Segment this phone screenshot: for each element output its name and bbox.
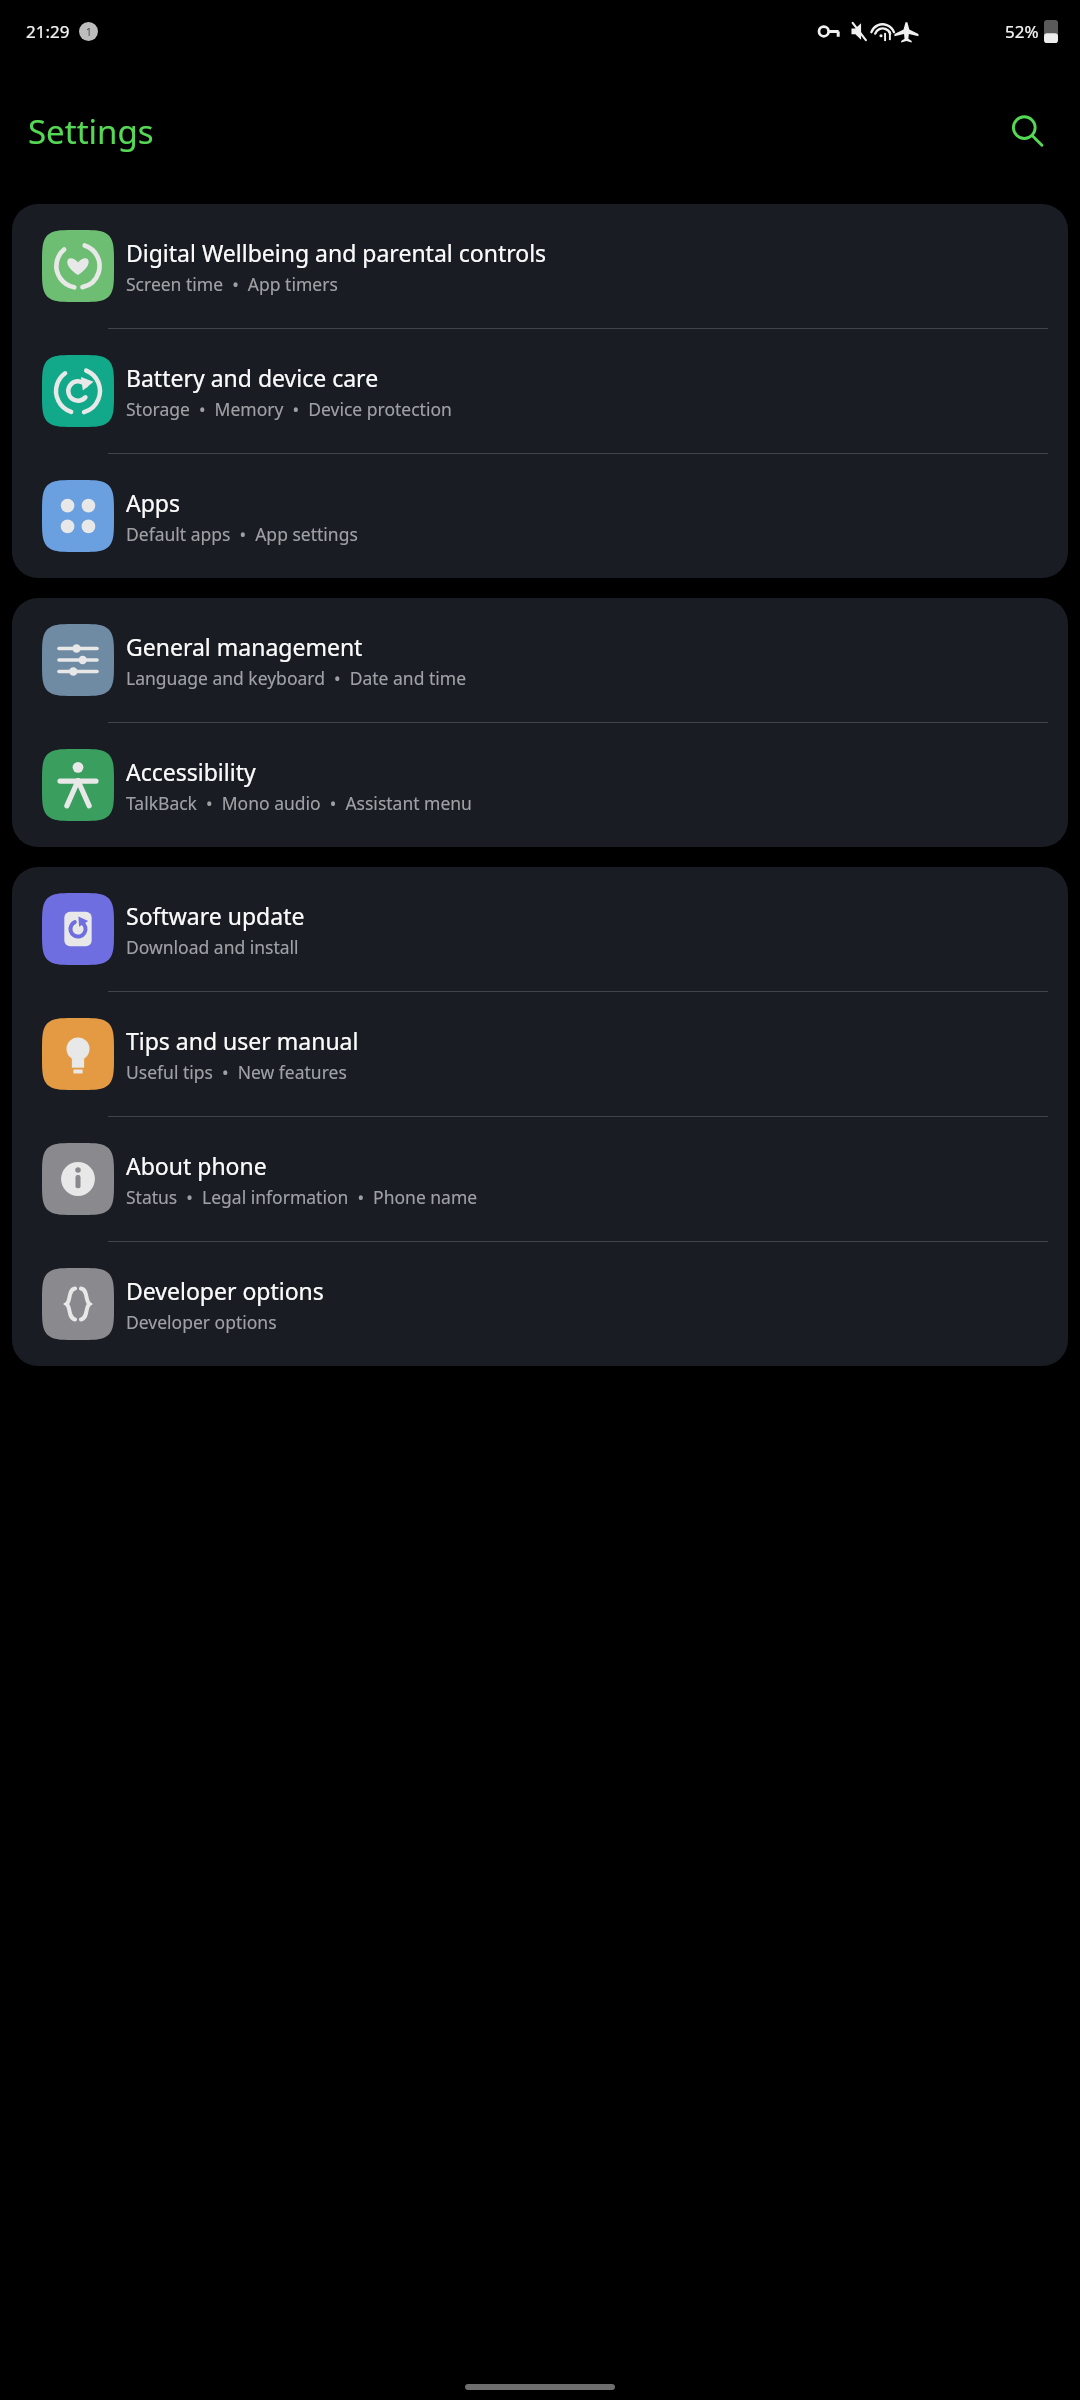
button[interactable]: About phone [12,1117,1068,1242]
button[interactable]: General management [12,598,1068,723]
staticText: General management [126,631,363,662]
button[interactable]: Developer options [12,1242,1068,1366]
staticText: Tips and user manual [126,1025,359,1056]
button[interactable]: Tips and user manual [12,992,1068,1117]
staticText: 21:29 [26,20,70,43]
staticText: Digital Wellbeing and parental controls [126,237,547,268]
staticText: Developer options [126,1310,277,1334]
button[interactable]: Search [1004,108,1050,154]
staticText: Settings [28,109,154,154]
button[interactable]: Digital Wellbeing and parental controls [12,204,1068,329]
staticText: Language and keyboard • Date and time [126,666,467,690]
staticText: Storage • Memory • Device protection [126,397,452,421]
button[interactable]: Accessibility [12,723,1068,847]
button[interactable]: Software update [12,867,1068,992]
staticText: About phone [126,1150,267,1181]
staticText: TalkBack • Mono audio • Assistant menu [126,791,472,815]
staticText: Accessibility [126,756,256,787]
staticText: Screen time • App timers [126,272,338,296]
staticText: Status • Legal information • Phone name [126,1185,478,1209]
button[interactable]: Battery and device care [12,329,1068,454]
staticText: Software update [126,900,305,931]
staticText: Useful tips • New features [126,1060,347,1084]
button[interactable]: Apps [12,454,1068,578]
staticText: Default apps • App settings [126,522,358,546]
staticText: Download and install [126,935,299,959]
staticText: 52% [1005,20,1039,43]
staticText: 1 [86,25,92,39]
staticText: Apps [126,487,181,518]
staticText: Battery and device care [126,362,379,393]
staticText: Developer options [126,1275,324,1306]
